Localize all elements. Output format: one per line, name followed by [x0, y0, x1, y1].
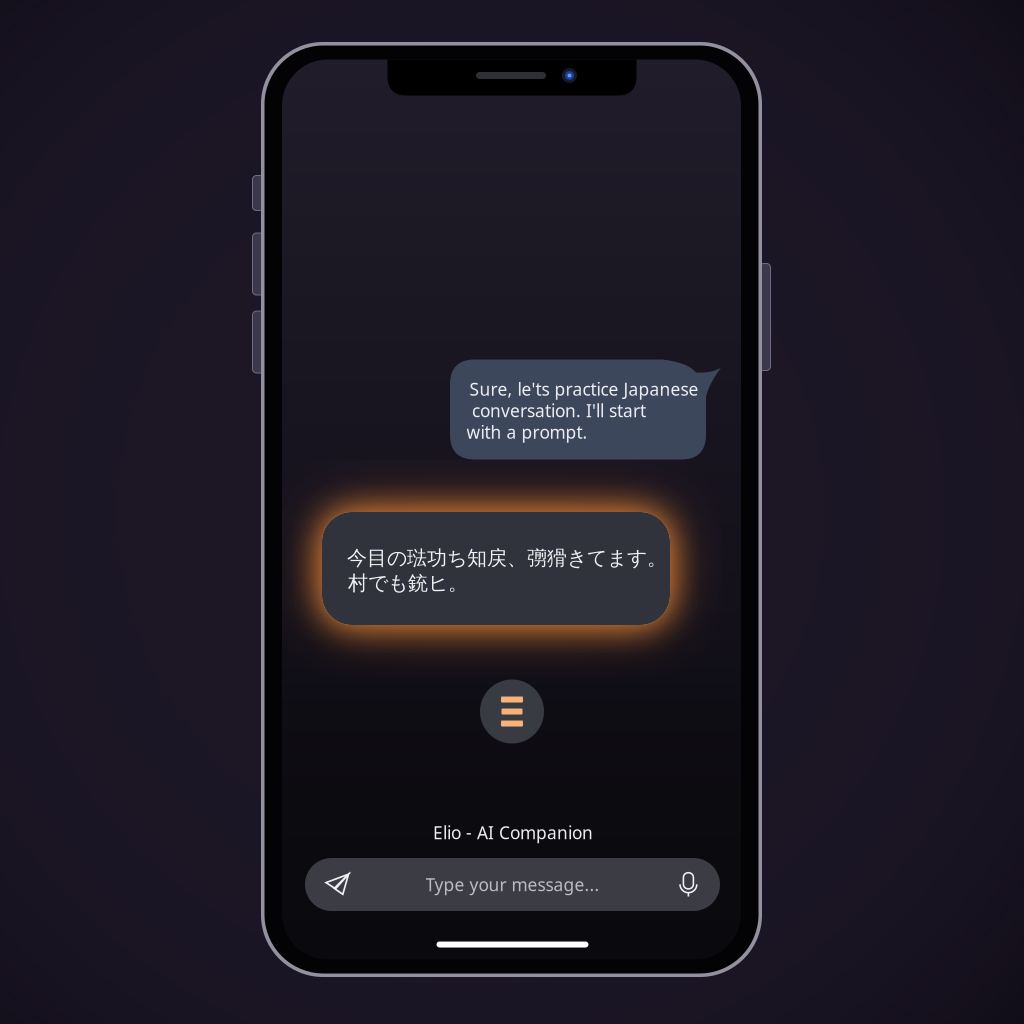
button[interactable]: Type your message... [305, 858, 720, 911]
staticText: Elio - AI Companion [433, 821, 593, 844]
staticText: Type your message... [425, 873, 599, 896]
button[interactable]: Menu [480, 679, 544, 743]
staticText: Sure, le'ts practice Japanese [469, 377, 698, 400]
staticText: with a prompt. [466, 420, 587, 443]
staticText: 今目の琺功ち知戻、彅猾きてます。 [347, 546, 667, 570]
staticText: 村でも銃ヒ。 [348, 571, 468, 595]
staticText: conversation. I'll start [472, 399, 646, 422]
